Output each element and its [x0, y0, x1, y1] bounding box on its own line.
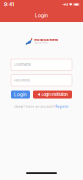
- button[interactable]: Register: [56, 105, 69, 108]
- staticText: Register: [56, 105, 69, 108]
- button[interactable]: Login: [11, 90, 30, 98]
- staticText: Password: [14, 78, 30, 82]
- staticText: University of Pécs: [34, 42, 48, 44]
- staticText: Username: [14, 62, 31, 67]
- button[interactable]: Password: [11, 74, 72, 86]
- staticText: 9:41: [4, 2, 14, 7]
- staticText: Login: [35, 12, 48, 18]
- staticText: Login Institution: [41, 92, 67, 97]
- staticText: Doesn't have an account?: [14, 105, 54, 108]
- button[interactable]: Username: [11, 59, 72, 70]
- button[interactable]: Login Institution: [33, 90, 72, 98]
- staticText: Login: [14, 92, 27, 97]
- staticText: PÉCSI TUDOMÁNYEGYETEM: [34, 39, 58, 41]
